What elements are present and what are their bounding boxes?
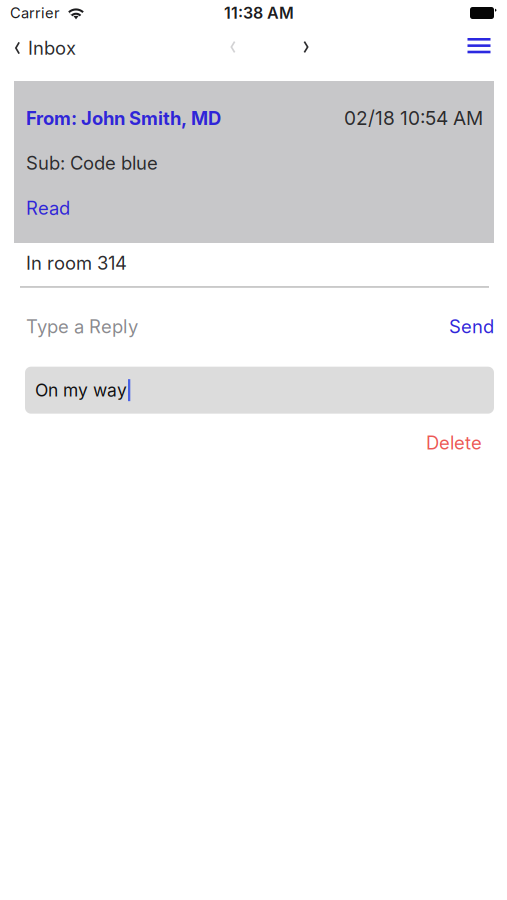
button[interactable]: Next message [284,26,328,66]
button[interactable]: Inbox [0,26,90,66]
button[interactable]: On my way [25,367,494,414]
button[interactable]: Menu [449,26,507,66]
staticText: Send [449,315,494,338]
staticText: 02/18 10:54 AM [344,106,483,130]
staticText: Read [26,197,70,219]
staticText: Carrier [10,4,60,22]
staticText: Sub: Code blue [26,152,158,174]
button[interactable]: Delete [426,432,482,454]
staticText: Delete [426,432,482,454]
staticText: On my way [35,380,127,401]
staticText: 11:38 AM [224,3,294,23]
button[interactable]: Previous message [211,26,255,66]
button[interactable]: Send [449,318,494,336]
staticText: In room 314 [26,252,127,274]
button[interactable]: Read [26,199,70,217]
staticText: Inbox [28,37,76,59]
staticText: Type a Reply [26,315,138,338]
staticText: From: John Smith, MD [26,107,221,129]
